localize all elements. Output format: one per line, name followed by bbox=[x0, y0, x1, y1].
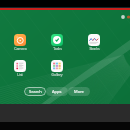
staticText: Tasks bbox=[53, 46, 62, 51]
staticText: Stocks bbox=[89, 46, 100, 51]
staticText: Camera bbox=[14, 46, 27, 51]
button[interactable]: Camera bbox=[7, 34, 33, 51]
staticText: Apps bbox=[52, 89, 62, 94]
button[interactable]: Tasks bbox=[44, 34, 70, 51]
button[interactable]: Search bbox=[24, 87, 46, 96]
button[interactable]: More bbox=[68, 87, 90, 96]
button[interactable]: Stocks bbox=[81, 34, 107, 51]
staticText: List bbox=[17, 72, 23, 77]
staticText: Gallery bbox=[51, 72, 63, 77]
button[interactable]: List bbox=[7, 60, 33, 77]
staticText: Search bbox=[29, 89, 42, 94]
staticText: More bbox=[74, 89, 84, 94]
button[interactable]: Apps bbox=[46, 87, 68, 96]
button[interactable]: Gallery bbox=[44, 60, 70, 77]
